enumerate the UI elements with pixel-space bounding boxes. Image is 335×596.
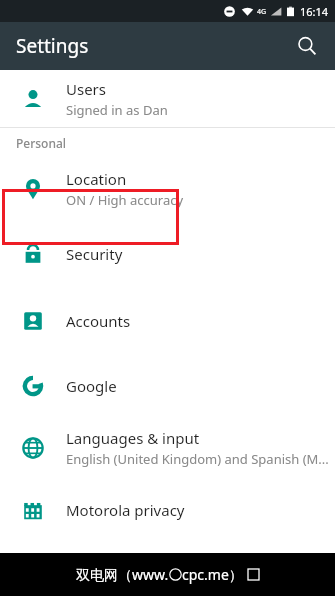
- staticText: Google: [66, 376, 117, 396]
- staticText: Languages & input: [66, 428, 200, 448]
- button[interactable]: Google: [0, 354, 335, 417]
- staticText: Motorola privacy: [66, 500, 185, 520]
- staticText: Personal: [16, 135, 67, 151]
- button[interactable]: Motorola privacy: [0, 479, 335, 541]
- staticText: 双电网（www.: [76, 565, 169, 584]
- button[interactable]: Languages & input: [0, 417, 335, 479]
- button[interactable]: Location: [0, 158, 335, 220]
- button[interactable]: Search: [287, 26, 327, 66]
- button[interactable]: Users: [0, 70, 335, 127]
- button[interactable]: Accounts: [0, 287, 335, 354]
- staticText: Signed in as Dan: [66, 101, 168, 119]
- button[interactable]: Security: [0, 220, 335, 287]
- staticText: ON / High accuracy: [66, 191, 184, 209]
- staticText: 4G: [257, 7, 267, 17]
- staticText: Accounts: [66, 311, 131, 331]
- staticText: 16:14: [300, 4, 329, 19]
- staticText: Settings: [16, 33, 89, 59]
- staticText: cpc.me）: [182, 565, 243, 584]
- staticText: Location: [66, 169, 127, 189]
- staticText: Users: [66, 79, 106, 99]
- staticText: English (United Kingdom) and Spanish (M.…: [66, 450, 329, 468]
- staticText: Security: [66, 244, 123, 264]
